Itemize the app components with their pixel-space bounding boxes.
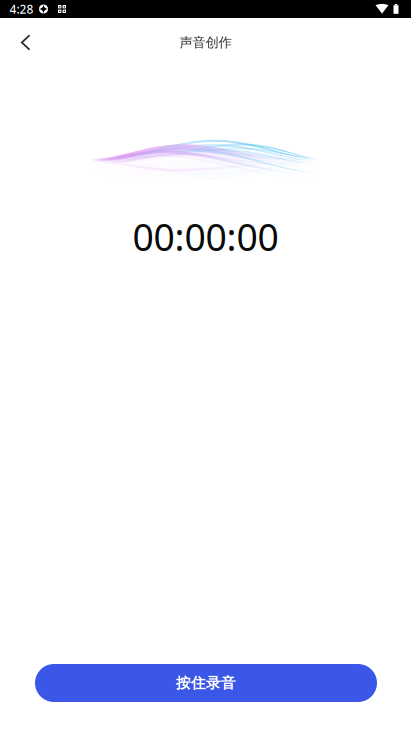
staticText: 4:28 — [9, 1, 33, 17]
staticText: 00:00:00 — [132, 212, 278, 261]
button[interactable]: Back — [4, 20, 48, 64]
staticText: 按住录音 — [176, 674, 236, 692]
staticText: 声音创作 — [179, 34, 231, 51]
button[interactable]: 按住录音 — [35, 664, 377, 702]
